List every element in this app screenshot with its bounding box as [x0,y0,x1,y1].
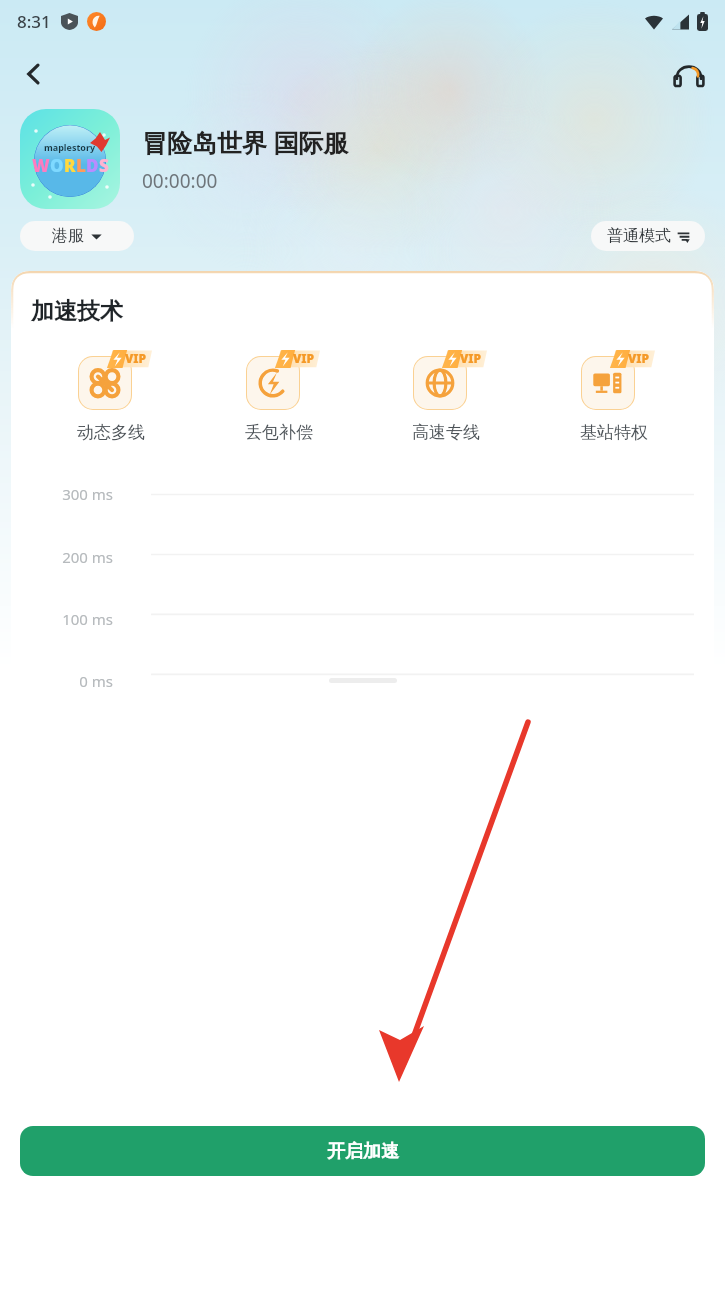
staticText: L [76,154,86,177]
staticText: 00:00:00 [142,168,218,194]
staticText: O [50,154,64,177]
staticText: 高速专线 [412,422,480,443]
staticText: VIP [293,350,315,366]
staticText: 0 ms [11,671,113,691]
button[interactable]: VIP [204,348,354,443]
staticText: D [86,154,99,177]
staticText: S [99,154,109,177]
button[interactable]: 开启加速 [20,1126,705,1176]
button[interactable]: VIP [371,348,521,443]
staticText: VIP [125,350,147,366]
staticText: 200 ms [11,547,113,567]
staticText: 8:31 [17,10,51,33]
staticText: 动态多线 [77,422,145,443]
staticText: VIP [460,350,482,366]
button[interactable]: Back [10,50,58,98]
staticText: 港服 [52,226,84,246]
staticText: maplestory [44,141,96,153]
staticText: 丢包补偿 [245,422,313,443]
staticText: 300 ms [11,484,113,504]
staticText: 加速技术 [31,297,123,326]
staticText: 开启加速 [327,1140,399,1163]
staticText: 100 ms [11,609,113,629]
staticText: VIP [628,350,650,366]
staticText: 冒险岛世界 国际服 [142,125,349,159]
button[interactable]: 港服 [20,221,134,251]
button[interactable]: VIP [36,348,186,443]
staticText: W [32,154,50,177]
button[interactable]: Customer service [665,50,713,98]
staticText: R [64,154,76,177]
staticText: 普通模式 [607,226,671,246]
staticText: 基站特权 [580,422,648,443]
button[interactable]: 普通模式 [591,221,705,251]
button[interactable]: VIP [539,348,689,443]
button[interactable]: maplestory [20,109,120,209]
